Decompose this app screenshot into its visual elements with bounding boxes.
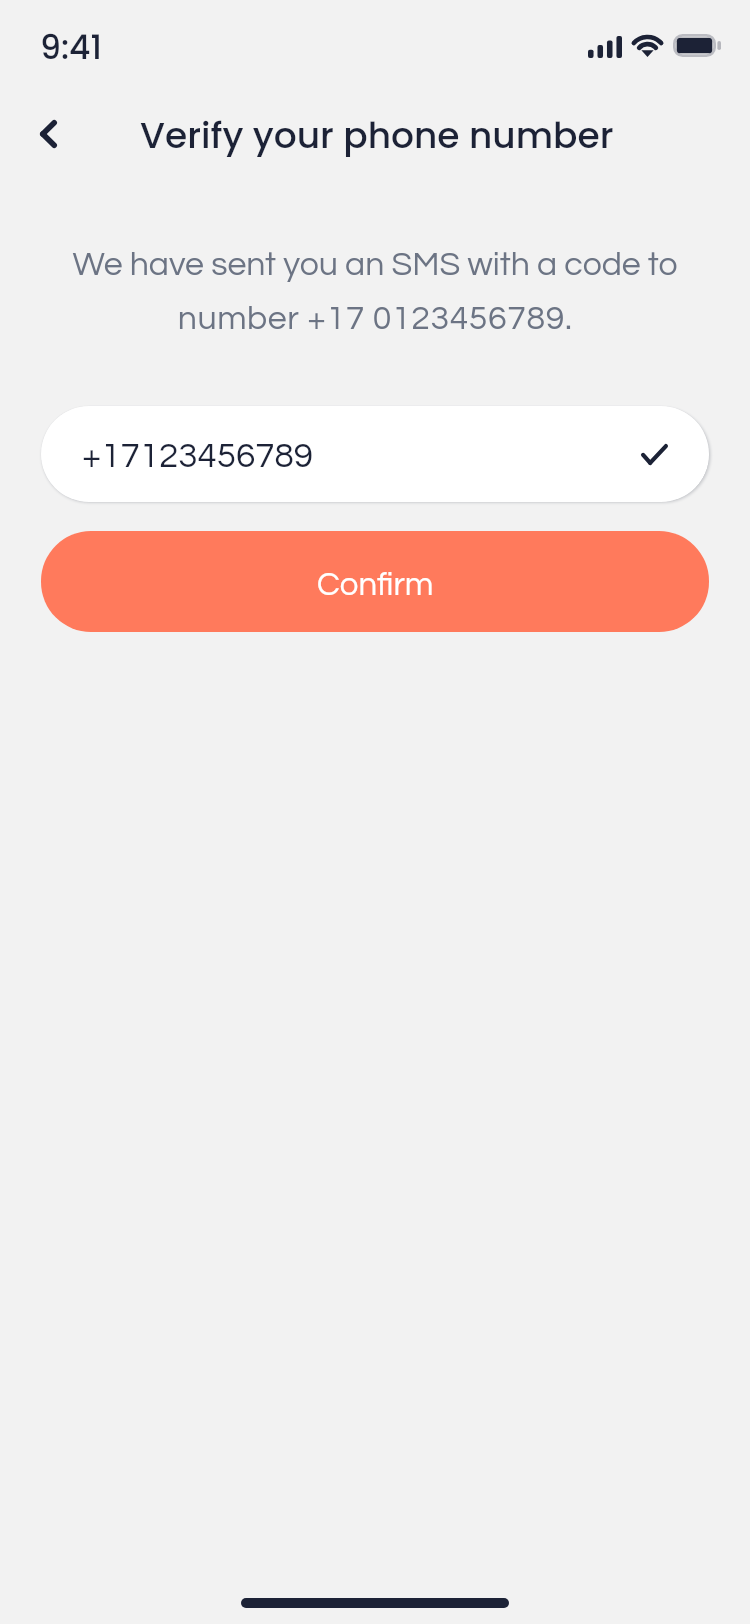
button[interactable]: +17123456789	[41, 406, 709, 502]
staticText: Verify your phone number	[140, 110, 614, 160]
staticText: 9:41	[40, 24, 102, 70]
staticText: +17123456789	[82, 438, 314, 474]
button[interactable]: Back	[20, 106, 76, 162]
button[interactable]: Confirm	[41, 531, 709, 632]
staticText: Confirm	[317, 568, 434, 602]
staticText: number +17 0123456789.	[0, 301, 750, 336]
staticText: We have sent you an SMS with a code to	[0, 247, 750, 282]
